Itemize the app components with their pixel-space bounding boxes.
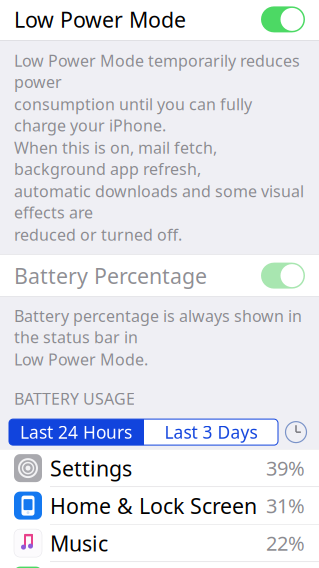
staticText: 22% (266, 530, 305, 556)
staticText: Low Power Mode temporarily reduces power (14, 50, 300, 92)
staticText: When this is on, mail fetch, background … (14, 137, 217, 179)
button[interactable]: Home & Lock Screen (0, 487, 319, 524)
staticText: automatic downloads and some visual effe… (14, 180, 304, 223)
staticText: Settings (50, 454, 132, 482)
staticText: 39% (266, 455, 305, 481)
staticText: consumption until you can fully charge y… (14, 93, 252, 136)
button[interactable]: Music (0, 525, 319, 562)
staticText: Last 24 Hours (20, 421, 132, 444)
staticText: Battery Percentage (14, 261, 207, 290)
staticText: Music (50, 529, 108, 557)
button[interactable]: Battery Percentage (0, 255, 319, 297)
button[interactable]: Low Power Mode (0, 0, 319, 40)
staticText: Home & Lock Screen (50, 491, 257, 520)
staticText: Last 3 Days (164, 421, 257, 444)
staticText: Battery percentage is always shown in th… (14, 305, 302, 348)
button[interactable]: Settings (0, 450, 319, 487)
staticText: 31% (266, 492, 305, 519)
staticText: Low Power Mode (14, 5, 186, 33)
button[interactable]: Last 3 Days (144, 419, 278, 445)
button[interactable]: Show battery usage by time (284, 420, 319, 444)
staticText: reduced or turned off. (14, 224, 182, 245)
staticText: Low Power Mode. (14, 349, 148, 370)
staticText: BATTERY USAGE (14, 388, 135, 409)
button[interactable]: Last 24 Hours (9, 419, 143, 445)
button[interactable]: Messages (0, 562, 319, 568)
